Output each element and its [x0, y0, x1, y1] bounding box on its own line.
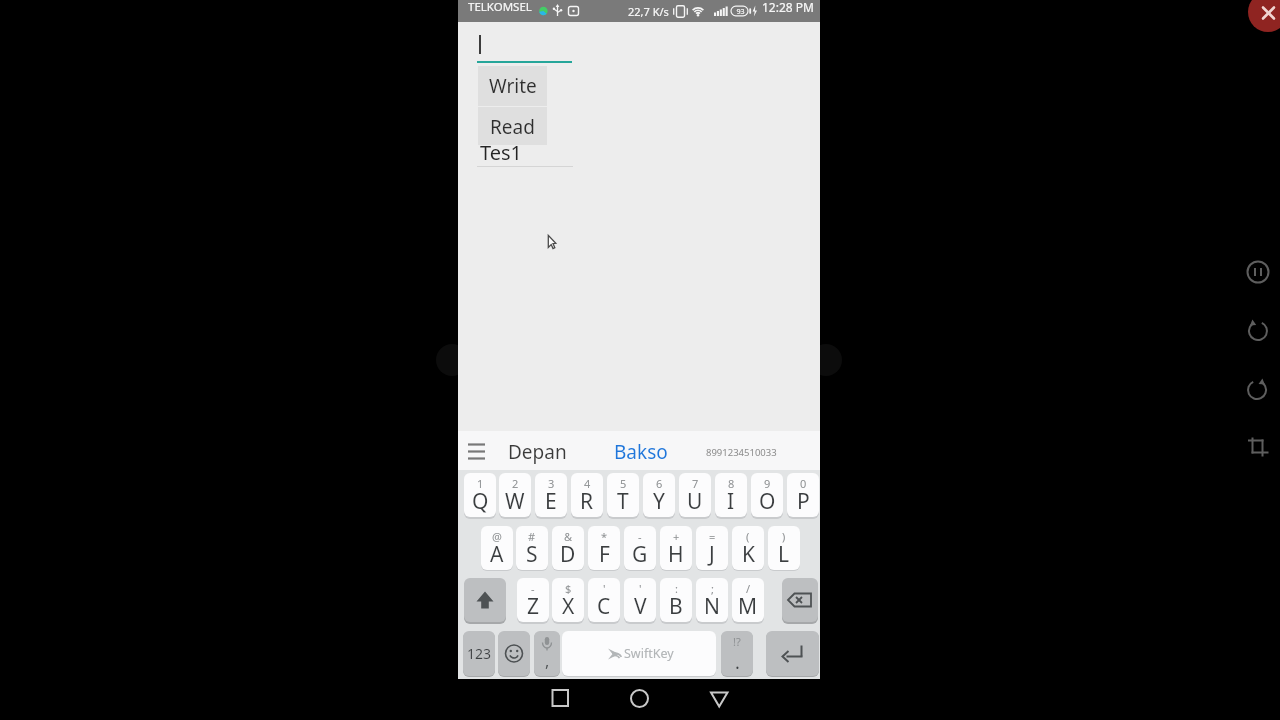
staticText: W [505, 487, 525, 516]
button[interactable]: !? [721, 631, 753, 676]
staticText: 123 [467, 644, 492, 663]
button[interactable]: 7 [679, 473, 711, 517]
staticText: B [669, 592, 683, 621]
button[interactable]: ; [696, 578, 728, 622]
staticText: D [560, 540, 576, 569]
button[interactable]: = [696, 526, 728, 570]
button[interactable]: 9 [751, 473, 783, 517]
staticText: + [673, 529, 680, 544]
staticText: Q [472, 487, 489, 516]
button[interactable] [464, 578, 506, 622]
staticText: 0 [800, 476, 807, 491]
button[interactable] [498, 631, 530, 676]
button[interactable]: Tes1 [477, 138, 573, 166]
staticText: ( [746, 529, 750, 544]
staticText: * [601, 529, 608, 544]
staticText: H [668, 540, 684, 569]
staticText: ' [639, 581, 642, 596]
button[interactable]: 5 [607, 473, 639, 517]
staticText: R [580, 487, 594, 516]
staticText: F [599, 540, 610, 569]
button[interactable]: * [588, 526, 620, 570]
staticText: L [778, 540, 790, 569]
staticText: V [634, 592, 647, 621]
staticText: # [528, 529, 536, 544]
staticText: / [746, 581, 751, 596]
staticText: 8 [728, 476, 735, 491]
staticText: - [531, 581, 535, 596]
button[interactable]: - [517, 578, 549, 622]
button[interactable] [624, 684, 656, 714]
button[interactable]: $ [552, 578, 584, 622]
button[interactable]: 8 [715, 473, 747, 517]
button[interactable]: Write [478, 66, 547, 106]
staticText: 22,7 K/s [628, 4, 669, 19]
staticText: 7 [692, 476, 699, 491]
staticText: & [564, 529, 573, 544]
button[interactable]: ' [624, 578, 656, 622]
staticText: 8991234510033 [706, 446, 777, 459]
staticText: A [490, 540, 504, 569]
button[interactable] [766, 631, 819, 676]
button[interactable]: @ [481, 526, 513, 570]
staticText: 93 [736, 6, 745, 16]
button[interactable]: 4 [571, 473, 603, 517]
button[interactable]: 6 [643, 473, 675, 517]
staticText: N [704, 592, 720, 621]
staticText: Z [527, 592, 540, 621]
staticText: S [526, 540, 538, 569]
button[interactable] [782, 578, 818, 622]
button[interactable]: Read [478, 107, 547, 146]
button[interactable]: - [624, 526, 656, 570]
staticText: : [675, 581, 678, 596]
button[interactable]: ' [588, 578, 620, 622]
staticText: 6 [656, 476, 663, 491]
button[interactable] [1248, 0, 1280, 32]
staticText: Depan [508, 439, 567, 465]
button[interactable]: Bakso [551, 436, 731, 468]
button[interactable]: SwiftKey [562, 631, 716, 676]
button[interactable]: # [516, 526, 548, 570]
staticText: U [687, 487, 703, 516]
staticText: . [735, 650, 740, 675]
staticText: , [545, 650, 550, 672]
staticText: X [562, 592, 575, 621]
staticText: !? [733, 634, 741, 649]
staticText: I [727, 487, 735, 516]
staticText: Tes1 [480, 139, 523, 166]
staticText: ' [603, 581, 606, 596]
staticText: 12:28 PM [762, 0, 814, 15]
button[interactable]: : [660, 578, 692, 622]
button[interactable]: / [732, 578, 764, 622]
button[interactable]: 2 [499, 473, 531, 517]
staticText: Write [489, 73, 537, 99]
staticText: Bakso [614, 439, 668, 465]
button[interactable]: ) [768, 526, 800, 570]
staticText: @ [492, 529, 502, 544]
button[interactable]: + [660, 526, 692, 570]
staticText: E [545, 487, 557, 516]
staticText: 5 [620, 476, 627, 491]
staticText: T [617, 487, 629, 516]
button[interactable]: 1 [464, 473, 496, 517]
staticText: J [709, 540, 715, 569]
staticText: $ [565, 581, 572, 596]
staticText: 4 [584, 476, 591, 491]
button[interactable]: ( [732, 526, 764, 570]
button[interactable]: 0 [787, 473, 819, 517]
button[interactable]: Depan [447, 436, 627, 468]
button[interactable] [544, 684, 576, 714]
staticText: ) [782, 529, 786, 544]
staticText: O [759, 487, 776, 516]
button[interactable]: , [534, 631, 560, 676]
button[interactable] [704, 684, 736, 714]
staticText: 1 [477, 476, 484, 491]
button[interactable]: 8991234510033 [651, 436, 831, 468]
button[interactable]: 3 [535, 473, 567, 517]
staticText: M [738, 592, 758, 621]
button[interactable]: 123 [463, 631, 495, 676]
staticText: 3 [548, 476, 555, 491]
staticText: K [742, 540, 755, 569]
button[interactable]: & [552, 526, 584, 570]
staticText: - [638, 529, 642, 544]
